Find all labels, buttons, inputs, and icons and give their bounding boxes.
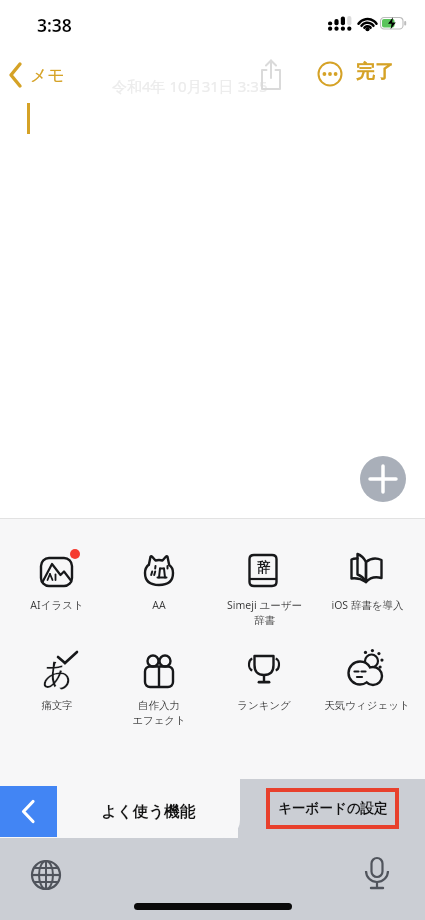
button[interactable]	[360, 456, 406, 502]
staticText: AIイラスト	[30, 598, 84, 612]
staticText: メモ	[30, 65, 65, 86]
button[interactable]	[362, 856, 392, 893]
staticText: 完了	[356, 60, 394, 84]
button[interactable]	[30, 859, 62, 891]
button[interactable]	[137, 549, 181, 593]
staticText: ランキング	[237, 699, 291, 712]
button[interactable]	[257, 58, 285, 92]
button[interactable]	[0, 786, 57, 837]
staticText: 令和4年 10月31日 3:35	[112, 76, 268, 96]
button[interactable]	[238, 779, 425, 839]
staticText: AA	[152, 598, 166, 612]
staticText: 痛文字	[41, 699, 73, 712]
staticText: 自作入力 エフェクト	[132, 699, 186, 727]
button[interactable]	[345, 649, 389, 693]
button[interactable]: よく使う機能	[57, 786, 240, 837]
staticText: あ	[42, 655, 73, 693]
staticText: よく使う機能	[101, 802, 196, 822]
button[interactable]: メモ	[8, 58, 65, 92]
button[interactable]	[345, 548, 389, 592]
button[interactable]	[242, 649, 286, 693]
staticText: 天気ウィジェット	[324, 699, 410, 712]
staticText: 辞	[257, 559, 271, 576]
button[interactable]	[317, 61, 343, 87]
button[interactable]	[137, 651, 181, 695]
staticText: 3:38	[37, 13, 72, 37]
staticText: キーボードの設定	[278, 800, 388, 817]
staticText: iOS 辞書を導入	[331, 598, 404, 612]
staticText: Simeji ユーザー 辞書	[227, 598, 302, 627]
button[interactable]: キーボードの設定	[266, 788, 399, 829]
button[interactable]: 完了	[356, 60, 394, 84]
button[interactable]	[35, 549, 79, 593]
button[interactable]	[242, 548, 286, 592]
